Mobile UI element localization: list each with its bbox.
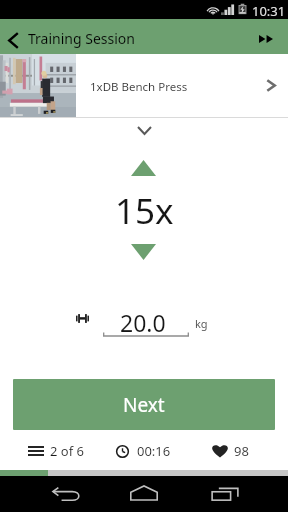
button[interactable]: 00:16: [116, 440, 171, 462]
button[interactable]: Increase repetitions: [110, 150, 176, 186]
button[interactable]: 1xDB Bench Press: [0, 54, 288, 117]
button[interactable]: Decrease repetitions: [110, 237, 176, 267]
button[interactable]: Navigate up: [0, 24, 26, 56]
staticText: Training Session: [28, 29, 135, 48]
button[interactable]: Home: [114, 476, 174, 512]
staticText: kg: [195, 316, 208, 331]
button[interactable]: Recent apps: [195, 476, 255, 512]
button[interactable]: Next: [13, 379, 275, 430]
staticText: Next: [123, 392, 165, 418]
staticText: 2 of 6: [50, 442, 84, 460]
button[interactable]: Weight: [100, 307, 186, 335]
staticText: 00:16: [137, 442, 171, 460]
button[interactable]: 98: [212, 440, 249, 462]
staticText: 15x: [115, 187, 174, 235]
staticText: 20.0: [120, 307, 166, 335]
staticText: 1xDB Bench Press: [90, 79, 188, 95]
button[interactable]: 2 of 6: [28, 440, 84, 462]
staticText: 10:31: [252, 2, 286, 20]
button[interactable]: Show exercise details: [0, 118, 288, 142]
button[interactable]: Skip exercise: [244, 21, 288, 56]
staticText: 98: [234, 442, 249, 460]
button[interactable]: Back: [36, 476, 96, 512]
